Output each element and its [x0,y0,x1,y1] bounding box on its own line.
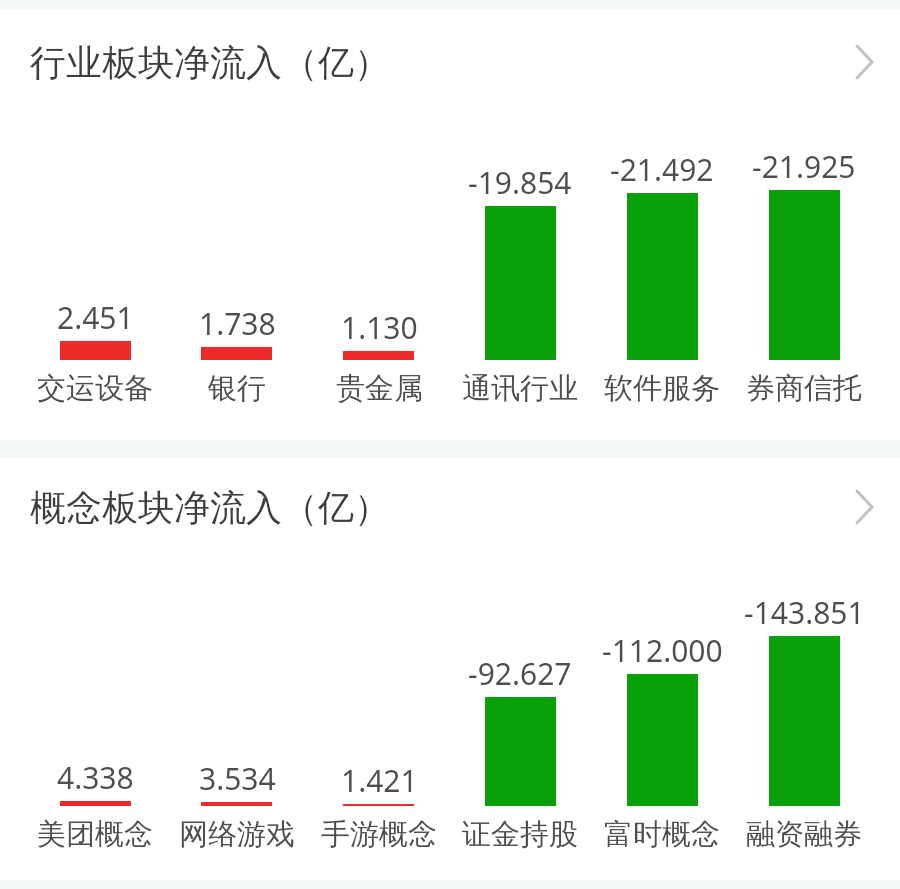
staticText: -112.000 [602,630,723,664]
staticText: 券商信托 [746,370,862,406]
staticText: 4.338 [57,757,134,791]
staticText: 2.451 [57,297,134,331]
staticText: 交运设备 [37,370,153,406]
staticText: 通讯行业 [462,370,578,406]
staticText: 美团概念 [37,816,153,852]
staticText: -21.925 [752,146,856,180]
staticText: 银行 [208,370,266,406]
button[interactable]: 行业板块净流入（亿） [0,32,900,92]
staticText: 1.738 [199,303,276,337]
staticText: -21.492 [610,149,714,183]
button[interactable]: 概念板块净流入（亿） [0,477,900,537]
staticText: -19.854 [468,162,572,196]
staticText: 软件服务 [604,370,720,406]
staticText: 1.421 [341,760,418,794]
staticText: 贵金属 [336,370,423,406]
staticText: 1.130 [341,307,418,341]
staticText: 概念板块净流入（亿） [30,485,390,530]
staticText: 3.534 [199,758,276,792]
staticText: 证金持股 [462,816,578,852]
staticText: 手游概念 [321,816,437,852]
staticText: -143.851 [744,592,865,626]
staticText: -92.627 [468,653,572,687]
staticText: 网络游戏 [179,816,295,852]
staticText: 融资融券 [746,816,862,852]
staticText: 行业板块净流入（亿） [30,40,390,85]
staticText: 富时概念 [604,816,720,852]
